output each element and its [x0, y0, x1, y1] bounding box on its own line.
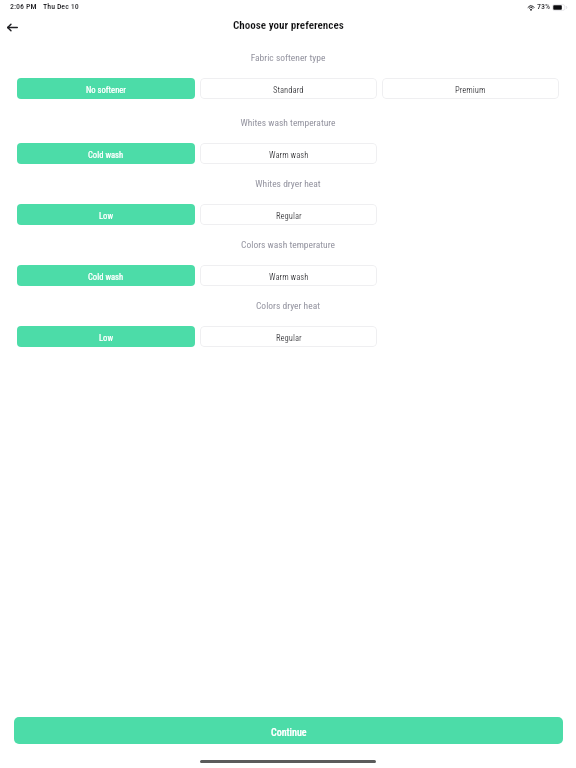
- button[interactable]: Low: [17, 326, 195, 347]
- button[interactable]: Warm wash: [200, 265, 377, 286]
- staticText: Choose your preferences: [233, 19, 344, 32]
- button[interactable]: Cold wash: [17, 143, 195, 164]
- button[interactable]: No softener: [17, 78, 195, 99]
- staticText: 2:06 PM: [10, 2, 37, 11]
- button[interactable]: Premium: [382, 78, 559, 99]
- staticText: Whites wash temperature: [0, 117, 576, 128]
- staticText: Continue: [271, 727, 307, 739]
- staticText: Regular: [276, 333, 302, 343]
- button[interactable]: Back: [0, 14, 25, 40]
- staticText: Cold wash: [88, 272, 124, 282]
- staticText: Premium: [455, 85, 486, 95]
- staticText: Thu Dec 10: [43, 2, 79, 11]
- staticText: 73%: [537, 2, 551, 11]
- staticText: Fabric softener type: [0, 52, 576, 63]
- button[interactable]: Low: [17, 204, 195, 225]
- staticText: Whites dryer heat: [0, 178, 576, 189]
- staticText: Cold wash: [88, 150, 124, 160]
- staticText: Low: [99, 211, 113, 221]
- button[interactable]: Warm wash: [200, 143, 377, 164]
- button[interactable]: Standard: [200, 78, 377, 99]
- staticText: Colors dryer heat: [0, 300, 576, 311]
- staticText: Warm wash: [269, 150, 309, 160]
- staticText: Standard: [273, 85, 304, 95]
- staticText: No softener: [86, 85, 126, 95]
- button[interactable]: Continue: [14, 717, 563, 744]
- staticText: Regular: [276, 211, 302, 221]
- button[interactable]: Regular: [200, 204, 377, 225]
- button[interactable]: Cold wash: [17, 265, 195, 286]
- button[interactable]: Regular: [200, 326, 377, 347]
- staticText: Low: [99, 333, 113, 343]
- staticText: Warm wash: [269, 272, 309, 282]
- staticText: Colors wash temperature: [0, 239, 576, 250]
